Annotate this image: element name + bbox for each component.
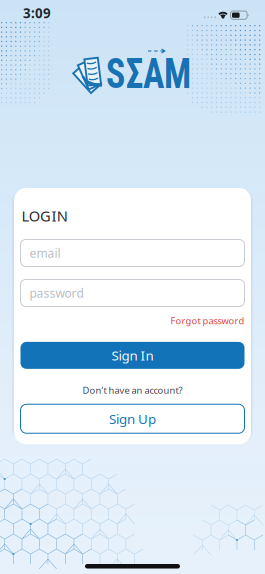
staticText: Sign Up: [109, 410, 156, 428]
staticText: 3:09: [23, 4, 51, 22]
staticText: Sign In: [111, 346, 153, 364]
staticText: email: [29, 245, 60, 261]
staticText: Don’t have an account?: [82, 384, 182, 396]
staticText: SΣAM: [98, 48, 199, 98]
staticText: LOGIN: [21, 206, 68, 225]
staticText: password: [29, 285, 83, 301]
staticText: Forgot password: [170, 314, 244, 327]
